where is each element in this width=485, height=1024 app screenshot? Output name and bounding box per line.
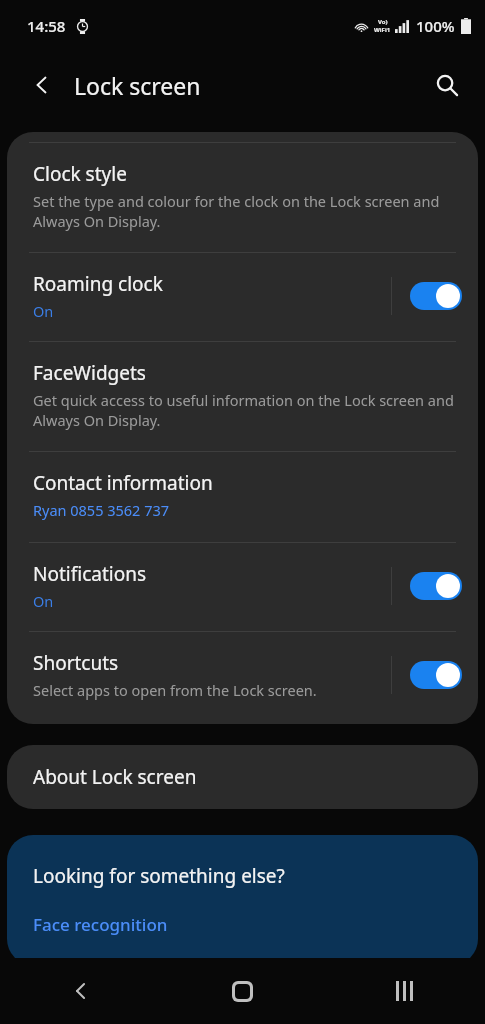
button[interactable]: Face recognition <box>7 913 168 936</box>
button[interactable]: Shortcuts <box>7 632 478 724</box>
staticText: WiFi1 <box>374 26 391 34</box>
staticText: Vo) <box>378 18 388 26</box>
button[interactable]: Notifications <box>7 543 478 631</box>
staticText: Get quick access to useful information o… <box>33 390 464 431</box>
staticText: On <box>33 301 54 321</box>
staticText: On <box>33 591 54 611</box>
button[interactable]: Notifications toggle <box>408 570 464 602</box>
staticText: Notifications <box>33 561 147 587</box>
button[interactable]: Contact information <box>7 452 478 542</box>
staticText: FaceWidgets <box>33 360 146 386</box>
staticText: 14:58 <box>27 16 66 36</box>
staticText: Set the type and colour for the clock on… <box>33 191 464 232</box>
button[interactable]: Back <box>49 959 113 1023</box>
staticText: 100% <box>416 16 455 36</box>
button[interactable]: Fingerprints <box>7 954 133 965</box>
button[interactable]: Roaming clock <box>7 253 478 341</box>
staticText: Select apps to open from the Lock screen… <box>33 680 317 700</box>
staticText: Clock style <box>33 161 127 187</box>
button[interactable]: FaceWidgets <box>7 342 478 451</box>
button[interactable]: Roaming clock toggle <box>408 280 464 312</box>
button[interactable]: About Lock screen <box>7 745 478 809</box>
button[interactable]: Recent apps <box>372 959 436 1023</box>
button[interactable]: Clock style <box>7 143 478 252</box>
staticText: Lock screen <box>74 70 201 101</box>
staticText: Ryan 0855 3562 737 <box>33 500 170 520</box>
staticText: About Lock screen <box>33 764 197 790</box>
button[interactable]: Search <box>423 61 471 109</box>
button[interactable]: Home <box>210 959 274 1023</box>
button[interactable]: Back <box>18 61 66 109</box>
staticText: Shortcuts <box>33 650 119 676</box>
staticText: Looking for something else? <box>33 863 285 889</box>
staticText: Roaming clock <box>33 271 163 297</box>
button[interactable]: Shortcuts toggle <box>408 659 464 691</box>
staticText: Contact information <box>33 470 213 496</box>
